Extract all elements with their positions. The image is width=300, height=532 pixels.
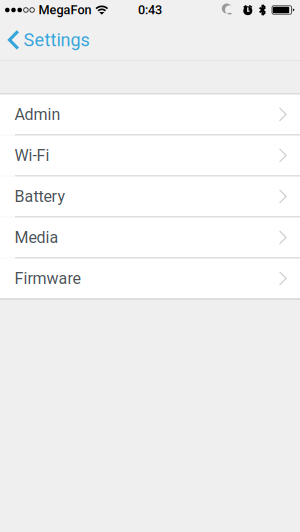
button[interactable]: Admin — [0, 94, 300, 134]
staticText: Admin — [14, 105, 60, 124]
button[interactable]: Wi-Fi — [0, 135, 300, 175]
staticText: Firmware — [14, 269, 80, 288]
staticText: 0:43 — [138, 3, 162, 17]
staticText: Battery — [14, 187, 65, 206]
button[interactable]: Firmware — [0, 258, 300, 298]
staticText: MegaFon — [38, 3, 91, 17]
button[interactable]: Settings — [0, 20, 99, 60]
staticText: Settings — [23, 29, 89, 51]
button[interactable]: Battery — [0, 176, 300, 216]
button[interactable]: Media — [0, 217, 300, 257]
staticText: Media — [14, 228, 58, 247]
staticText: Wi-Fi — [14, 146, 49, 165]
